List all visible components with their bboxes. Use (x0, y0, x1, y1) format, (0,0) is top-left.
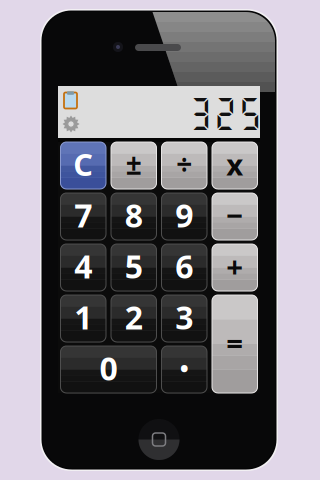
button[interactable]: 6 (161, 244, 207, 291)
button[interactable]: • (161, 346, 207, 393)
button[interactable]: Settings (62, 115, 79, 132)
staticText: + (226, 246, 243, 285)
button[interactable]: Home (138, 419, 179, 460)
staticText: 5 (125, 245, 143, 287)
staticText: − (226, 195, 243, 234)
staticText: C (73, 144, 93, 184)
button[interactable]: = (212, 295, 257, 393)
button[interactable]: 7 (60, 193, 106, 240)
staticText: 325 (188, 93, 263, 133)
staticText: 2 (125, 296, 143, 338)
staticText: • (180, 352, 189, 384)
staticText: 4 (74, 245, 92, 287)
button[interactable]: 8 (111, 193, 156, 240)
button[interactable]: 9 (161, 193, 207, 240)
button[interactable]: Paste (64, 92, 77, 108)
button[interactable]: ± (111, 142, 156, 189)
button[interactable]: + (212, 244, 257, 291)
button[interactable]: C (60, 142, 106, 189)
staticText: x (226, 144, 243, 183)
staticText: 9 (175, 194, 193, 236)
button[interactable]: 1 (60, 295, 106, 342)
button[interactable]: 4 (60, 244, 106, 291)
button[interactable]: 2 (111, 295, 156, 342)
staticText: 1 (74, 296, 92, 338)
button[interactable]: x (212, 142, 257, 189)
staticText: 3 (175, 296, 193, 338)
staticText: 8 (125, 194, 143, 236)
staticText: ÷ (176, 145, 192, 183)
button[interactable]: ÷ (161, 142, 207, 189)
staticText: 7 (74, 194, 92, 236)
button[interactable]: 3 (161, 295, 207, 342)
staticText: = (226, 323, 243, 362)
staticText: 6 (175, 245, 193, 287)
button[interactable]: − (212, 193, 257, 240)
button[interactable]: 5 (111, 244, 156, 291)
staticText: 0 (99, 347, 117, 389)
staticText: ± (126, 145, 142, 183)
button[interactable]: 0 (60, 346, 156, 393)
